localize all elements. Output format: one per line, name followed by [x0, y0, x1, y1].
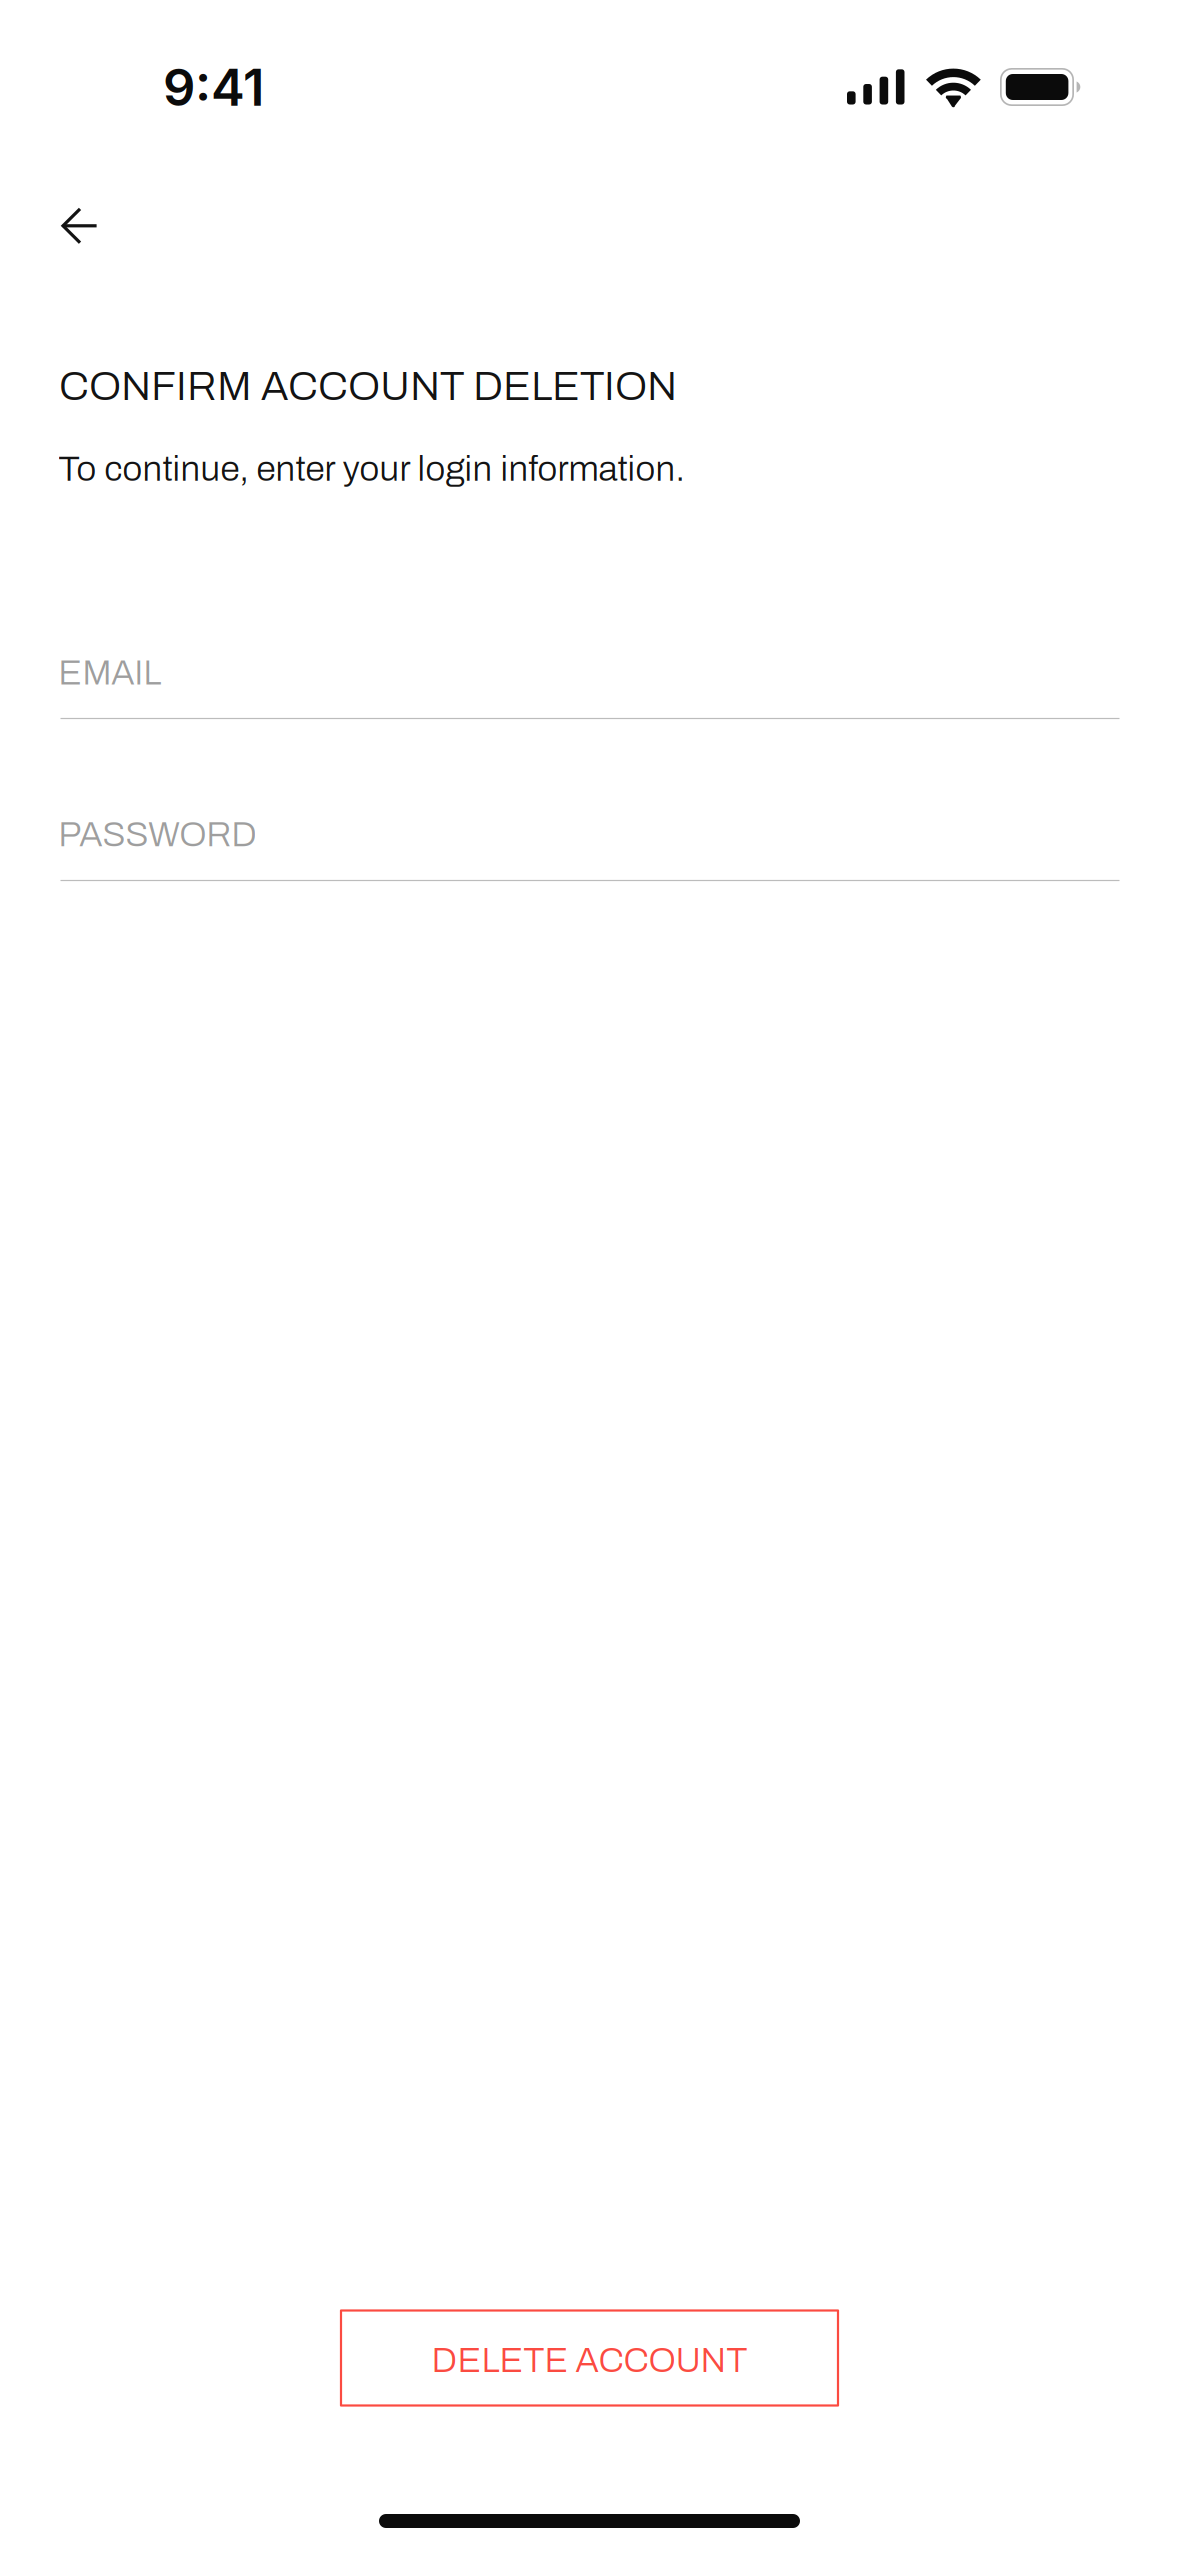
staticText: To continue, enter your login informatio…	[59, 450, 685, 488]
staticText: EMAIL	[58, 654, 161, 692]
staticText: 9:41	[163, 57, 264, 118]
button[interactable]: DELETE ACCOUNT	[341, 2310, 838, 2405]
staticText: CONFIRM ACCOUNT DELETION	[59, 364, 677, 409]
button[interactable]: Back	[38, 167, 170, 285]
staticText: DELETE ACCOUNT	[431, 2342, 747, 2379]
staticText: PASSWORD	[58, 816, 257, 853]
